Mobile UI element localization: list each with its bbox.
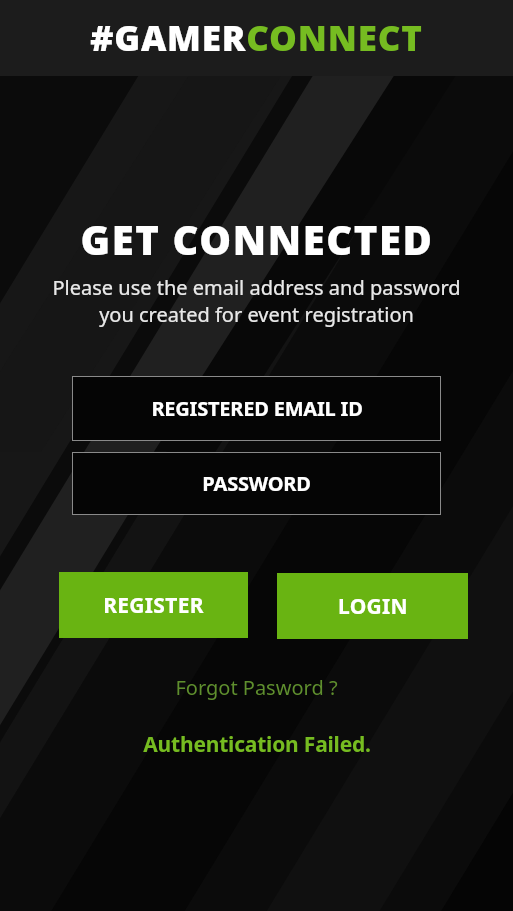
button[interactable]: REGISTER bbox=[59, 572, 248, 638]
button[interactable]: Forgot Pasword ? bbox=[175, 674, 338, 701]
staticText: #GAMERCONNECT bbox=[90, 14, 423, 62]
button[interactable]: PASSWORD bbox=[72, 452, 441, 515]
staticText: Please use the email address and passwor… bbox=[52, 274, 461, 328]
staticText: REGISTERED EMAIL ID bbox=[151, 395, 363, 422]
button[interactable]: REGISTERED EMAIL ID bbox=[72, 376, 441, 441]
staticText: PASSWORD bbox=[202, 470, 311, 497]
staticText: GET CONNECTED bbox=[80, 212, 434, 266]
staticText: Authentication Failed. bbox=[143, 730, 371, 759]
staticText: LOGIN bbox=[338, 592, 408, 621]
staticText: REGISTER bbox=[103, 591, 204, 620]
button[interactable]: LOGIN bbox=[277, 573, 468, 639]
staticText: Forgot Pasword ? bbox=[175, 674, 338, 701]
